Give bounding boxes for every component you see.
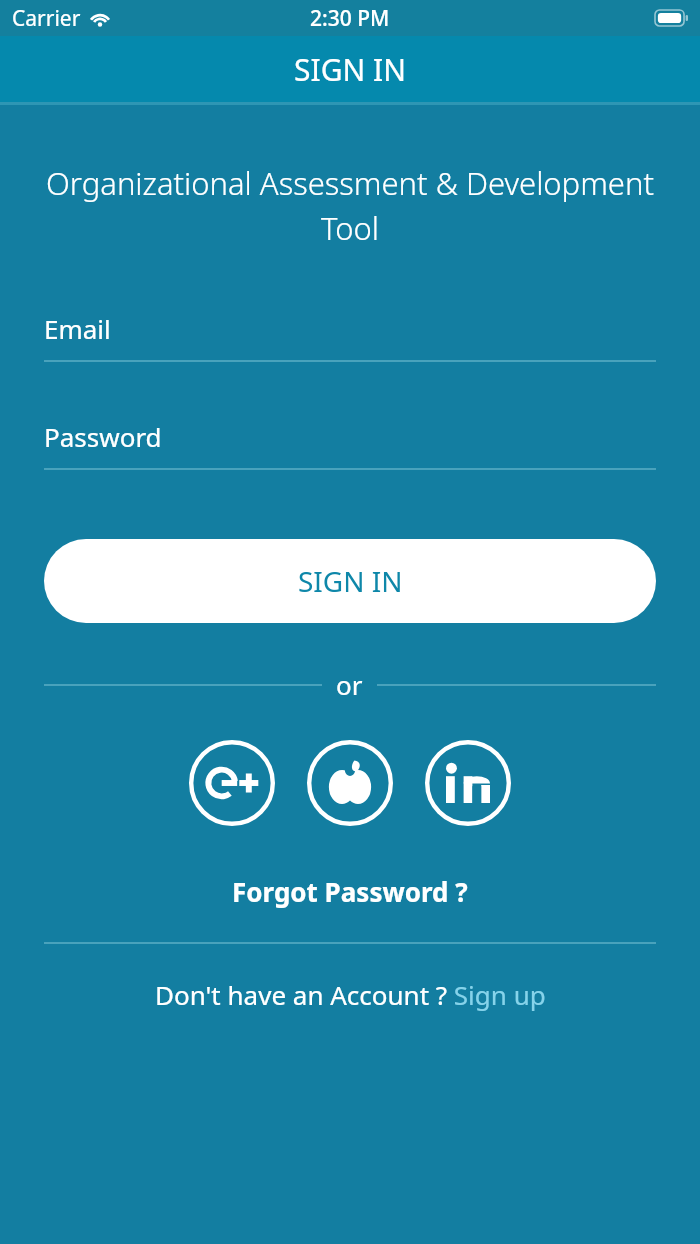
button[interactable]: SIGN IN — [44, 539, 656, 623]
staticText: Forgot Password ? — [232, 874, 468, 909]
staticText: Carrier — [12, 4, 81, 33]
staticText: Organizational Assessment & Development … — [44, 162, 656, 249]
button[interactable]: Forgot Password ? — [44, 874, 656, 909]
button[interactable]: Don't have an Account ? Sign up — [44, 977, 656, 1012]
button[interactable]: Email — [44, 311, 656, 362]
staticText: SIGN IN — [298, 562, 403, 600]
button[interactable]: Password — [44, 419, 656, 470]
staticText: Password — [44, 419, 162, 454]
button[interactable]: Sign in with LinkedIn — [425, 740, 511, 826]
staticText: SIGN IN — [294, 49, 407, 90]
button[interactable]: Sign in with Apple — [307, 740, 393, 826]
staticText: Don't have an Account ? Sign up — [155, 977, 546, 1012]
staticText: Email — [44, 311, 111, 346]
button[interactable]: Sign in with Google — [189, 740, 275, 826]
staticText: 2:30 PM — [310, 4, 390, 33]
staticText: or — [336, 667, 363, 702]
